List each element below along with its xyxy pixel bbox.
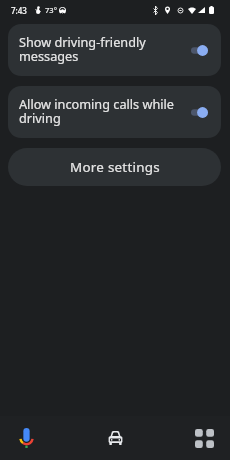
staticText: More settings	[70, 158, 160, 176]
button[interactable]: Apps	[186, 420, 222, 456]
button[interactable]: More settings	[8, 148, 221, 186]
staticText: 7:43	[11, 5, 27, 16]
button[interactable]: Assistant	[8, 420, 44, 456]
button[interactable]: Driving mode	[97, 420, 133, 456]
staticText: 73°	[45, 5, 57, 15]
staticText: Allow incoming calls while driving	[19, 95, 187, 127]
button[interactable]: Show driving-friendly messages	[8, 24, 221, 76]
button[interactable]: Allow incoming calls while driving	[8, 86, 221, 138]
staticText: Show driving-friendly messages	[19, 33, 187, 65]
